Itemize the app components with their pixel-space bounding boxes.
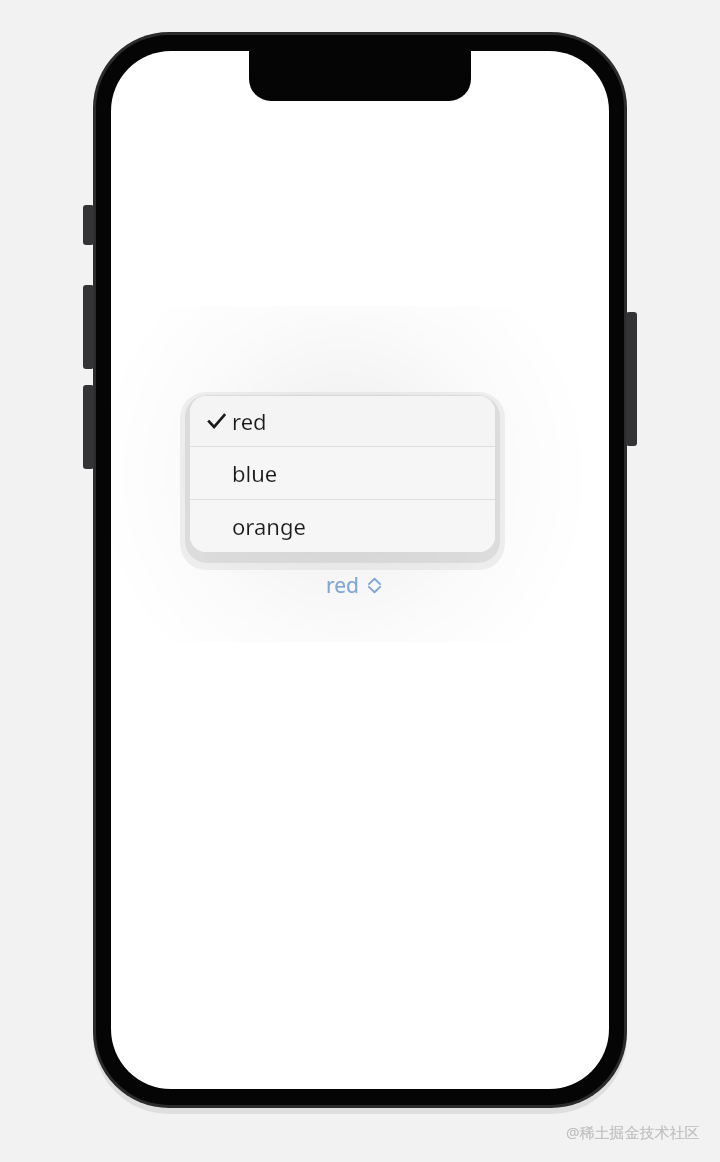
- other: Open picker: [366, 577, 383, 594]
- button[interactable]: blue: [190, 447, 495, 499]
- staticText: orange: [232, 511, 306, 541]
- button[interactable]: red: [320, 568, 389, 603]
- button[interactable]: red: [190, 396, 495, 446]
- staticText: red: [232, 406, 267, 436]
- button[interactable]: orange: [190, 500, 495, 552]
- staticText: red: [326, 571, 360, 600]
- staticText: blue: [232, 458, 278, 488]
- staticText: @稀土掘金技术社区: [566, 1122, 700, 1142]
